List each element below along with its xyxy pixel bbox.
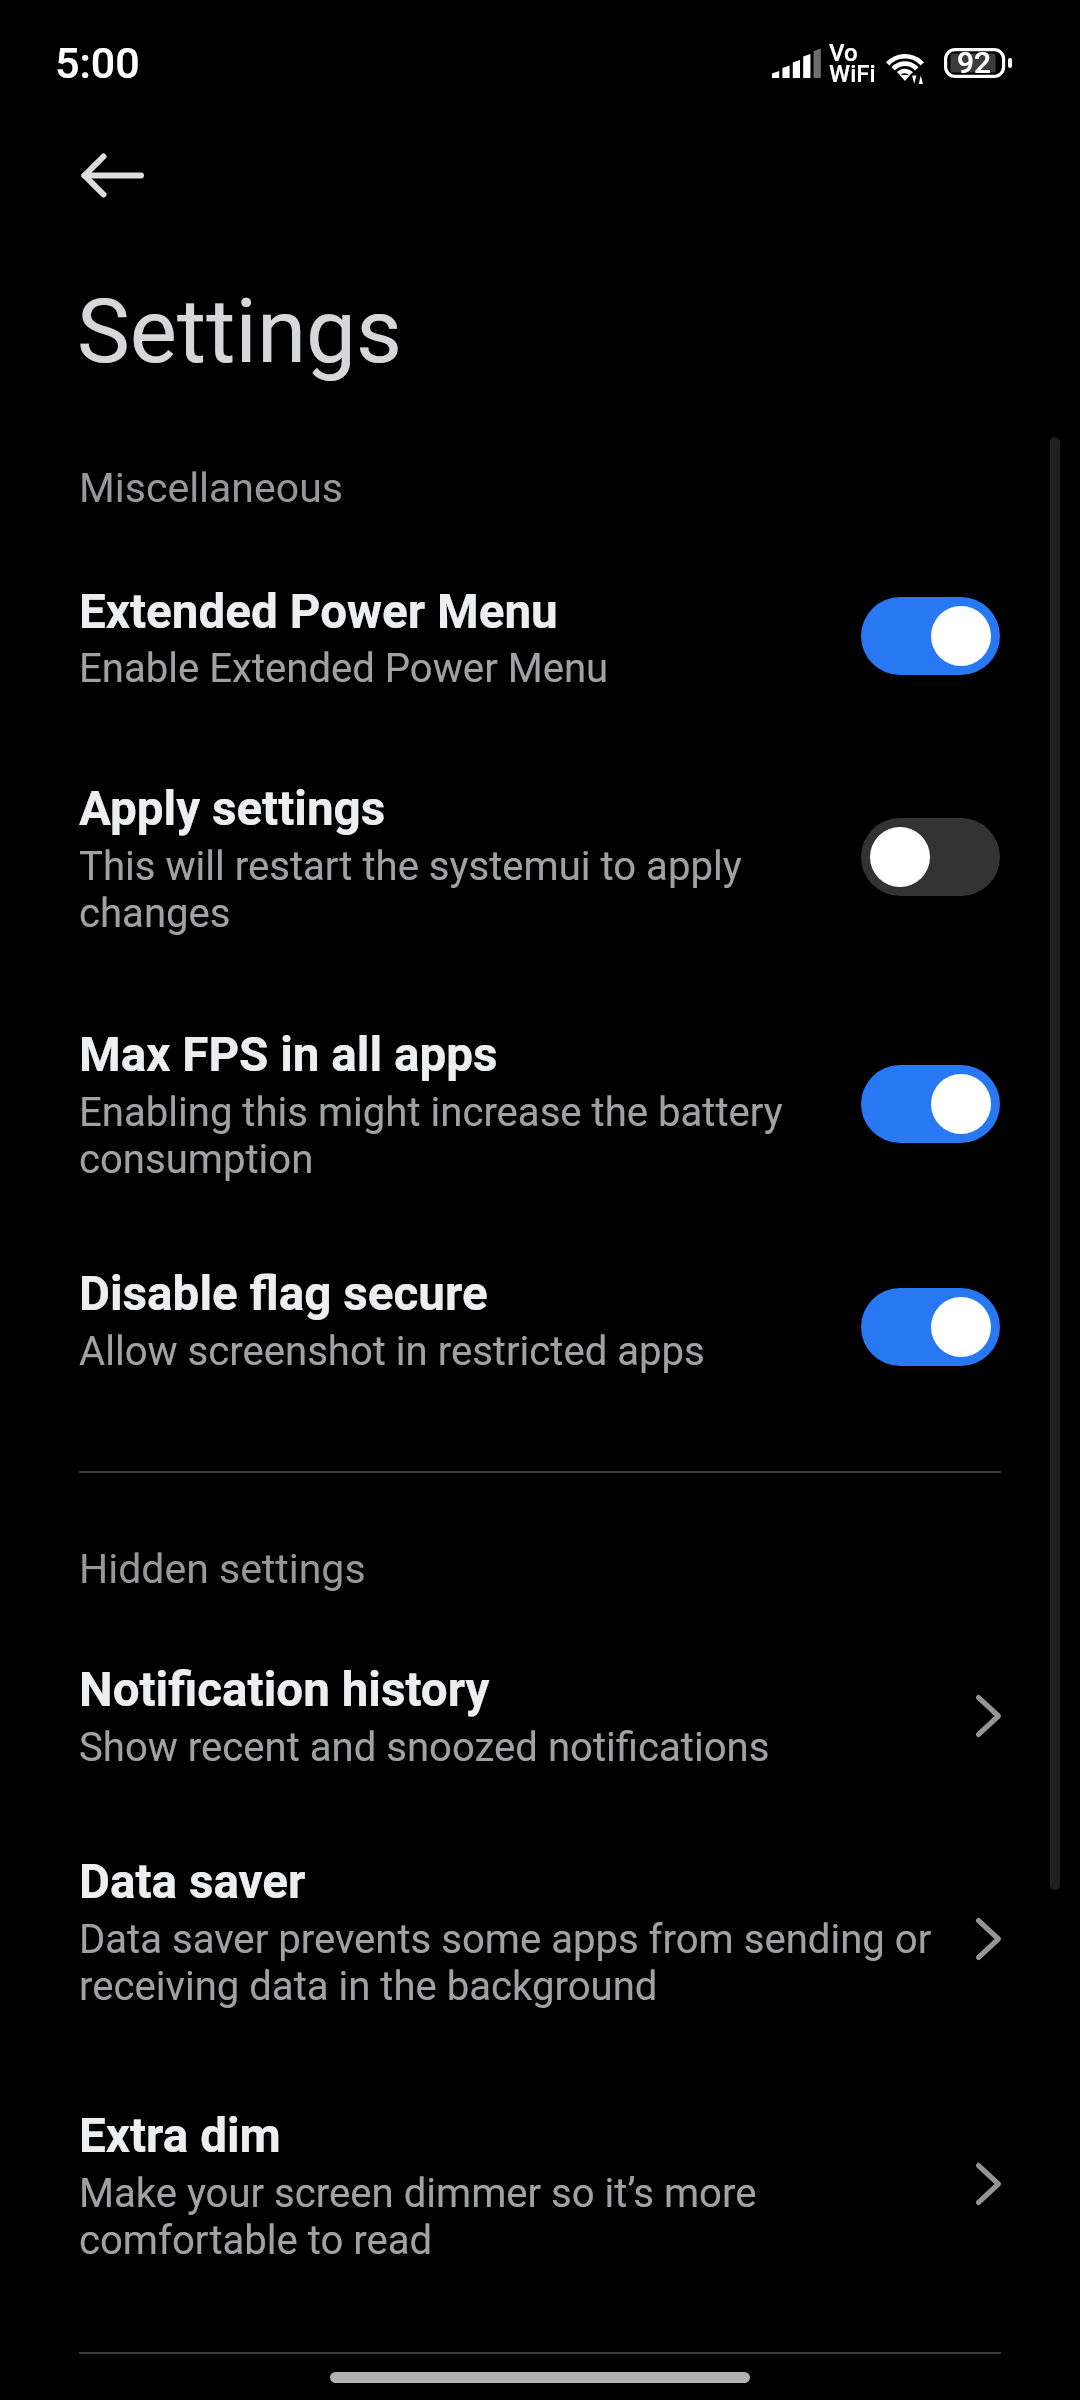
staticText: Make your screen dimmer so it’s more: [79, 2170, 757, 2217]
staticText: 92: [957, 45, 992, 80]
staticText: This will restart the systemui to apply: [79, 843, 742, 890]
staticText: Allow screenshot in restricted apps: [79, 1328, 705, 1375]
button[interactable]: Switch on: [861, 1065, 1000, 1143]
staticText: Hidden settings: [79, 1545, 366, 1593]
staticText: Data saver prevents some apps from sendi…: [79, 1916, 932, 1963]
staticText: changes: [79, 890, 231, 937]
staticText: Show recent and snoozed notifications: [79, 1724, 770, 1771]
button[interactable]: Switch off: [861, 818, 1000, 896]
button[interactable]: [0, 1240, 1080, 1400]
staticText: Data saver: [79, 1854, 306, 1910]
button[interactable]: Switch on: [861, 1288, 1000, 1366]
staticText: Settings: [77, 279, 402, 383]
staticText: Enabling this might increase the battery: [79, 1089, 783, 1136]
staticText: Extra dim: [79, 2108, 281, 2164]
staticText: Max FPS in all apps: [79, 1027, 498, 1083]
button[interactable]: [0, 558, 1080, 718]
button[interactable]: [0, 755, 1080, 962]
staticText: WiFi: [829, 60, 876, 88]
staticText: consumption: [79, 1136, 314, 1183]
staticText: comfortable to read: [79, 2217, 433, 2264]
staticText: Enable Extended Power Menu: [79, 645, 609, 692]
button[interactable]: Back: [60, 123, 164, 227]
staticText: Notification history: [79, 1662, 490, 1718]
staticText: Vo: [829, 39, 858, 67]
button[interactable]: [0, 1001, 1080, 1208]
button[interactable]: Switch on: [861, 597, 1000, 675]
staticText: receiving data in the background: [79, 1963, 658, 2010]
button[interactable]: Open Data saver: [948, 1899, 1028, 1979]
button[interactable]: [0, 2083, 1080, 2290]
button[interactable]: [0, 1636, 1080, 1796]
staticText: Apply settings: [79, 781, 386, 837]
staticText: Extended Power Menu: [79, 584, 558, 640]
button[interactable]: Open Extra dim: [948, 2144, 1028, 2224]
staticText: Disable flag secure: [79, 1266, 488, 1322]
staticText: 5:00: [55, 38, 140, 88]
staticText: Miscellaneous: [79, 464, 343, 512]
button[interactable]: Open Notification history: [948, 1676, 1028, 1756]
button[interactable]: [0, 1828, 1080, 2035]
